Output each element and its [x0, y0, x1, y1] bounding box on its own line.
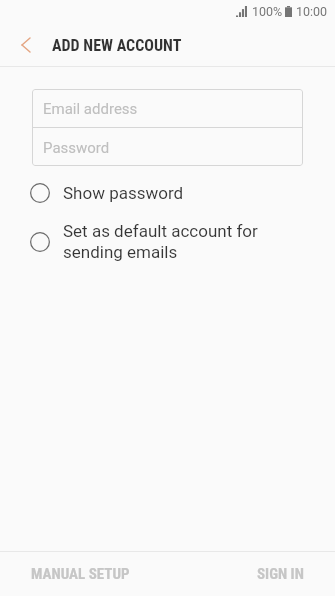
button[interactable]: SIGN IN [167, 552, 335, 596]
staticText: 100% [252, 4, 283, 19]
button[interactable]: Set as default account for sending email… [0, 212, 335, 271]
button[interactable]: Show password [0, 174, 335, 212]
staticText: Password [43, 139, 110, 157]
staticText: SIGN IN [257, 565, 304, 583]
button[interactable]: Email address [32, 89, 303, 127]
staticText: Email address [43, 100, 138, 118]
button[interactable]: Password [32, 128, 303, 166]
staticText: Set as default account for sending email… [63, 221, 258, 262]
staticText: ADD NEW ACCOUNT [52, 36, 182, 55]
staticText: MANUAL SETUP [31, 565, 130, 583]
button[interactable]: MANUAL SETUP [0, 552, 167, 596]
staticText: Show password [63, 183, 184, 203]
button[interactable]: Back [0, 24, 42, 66]
staticText: 10:00 [296, 4, 328, 19]
